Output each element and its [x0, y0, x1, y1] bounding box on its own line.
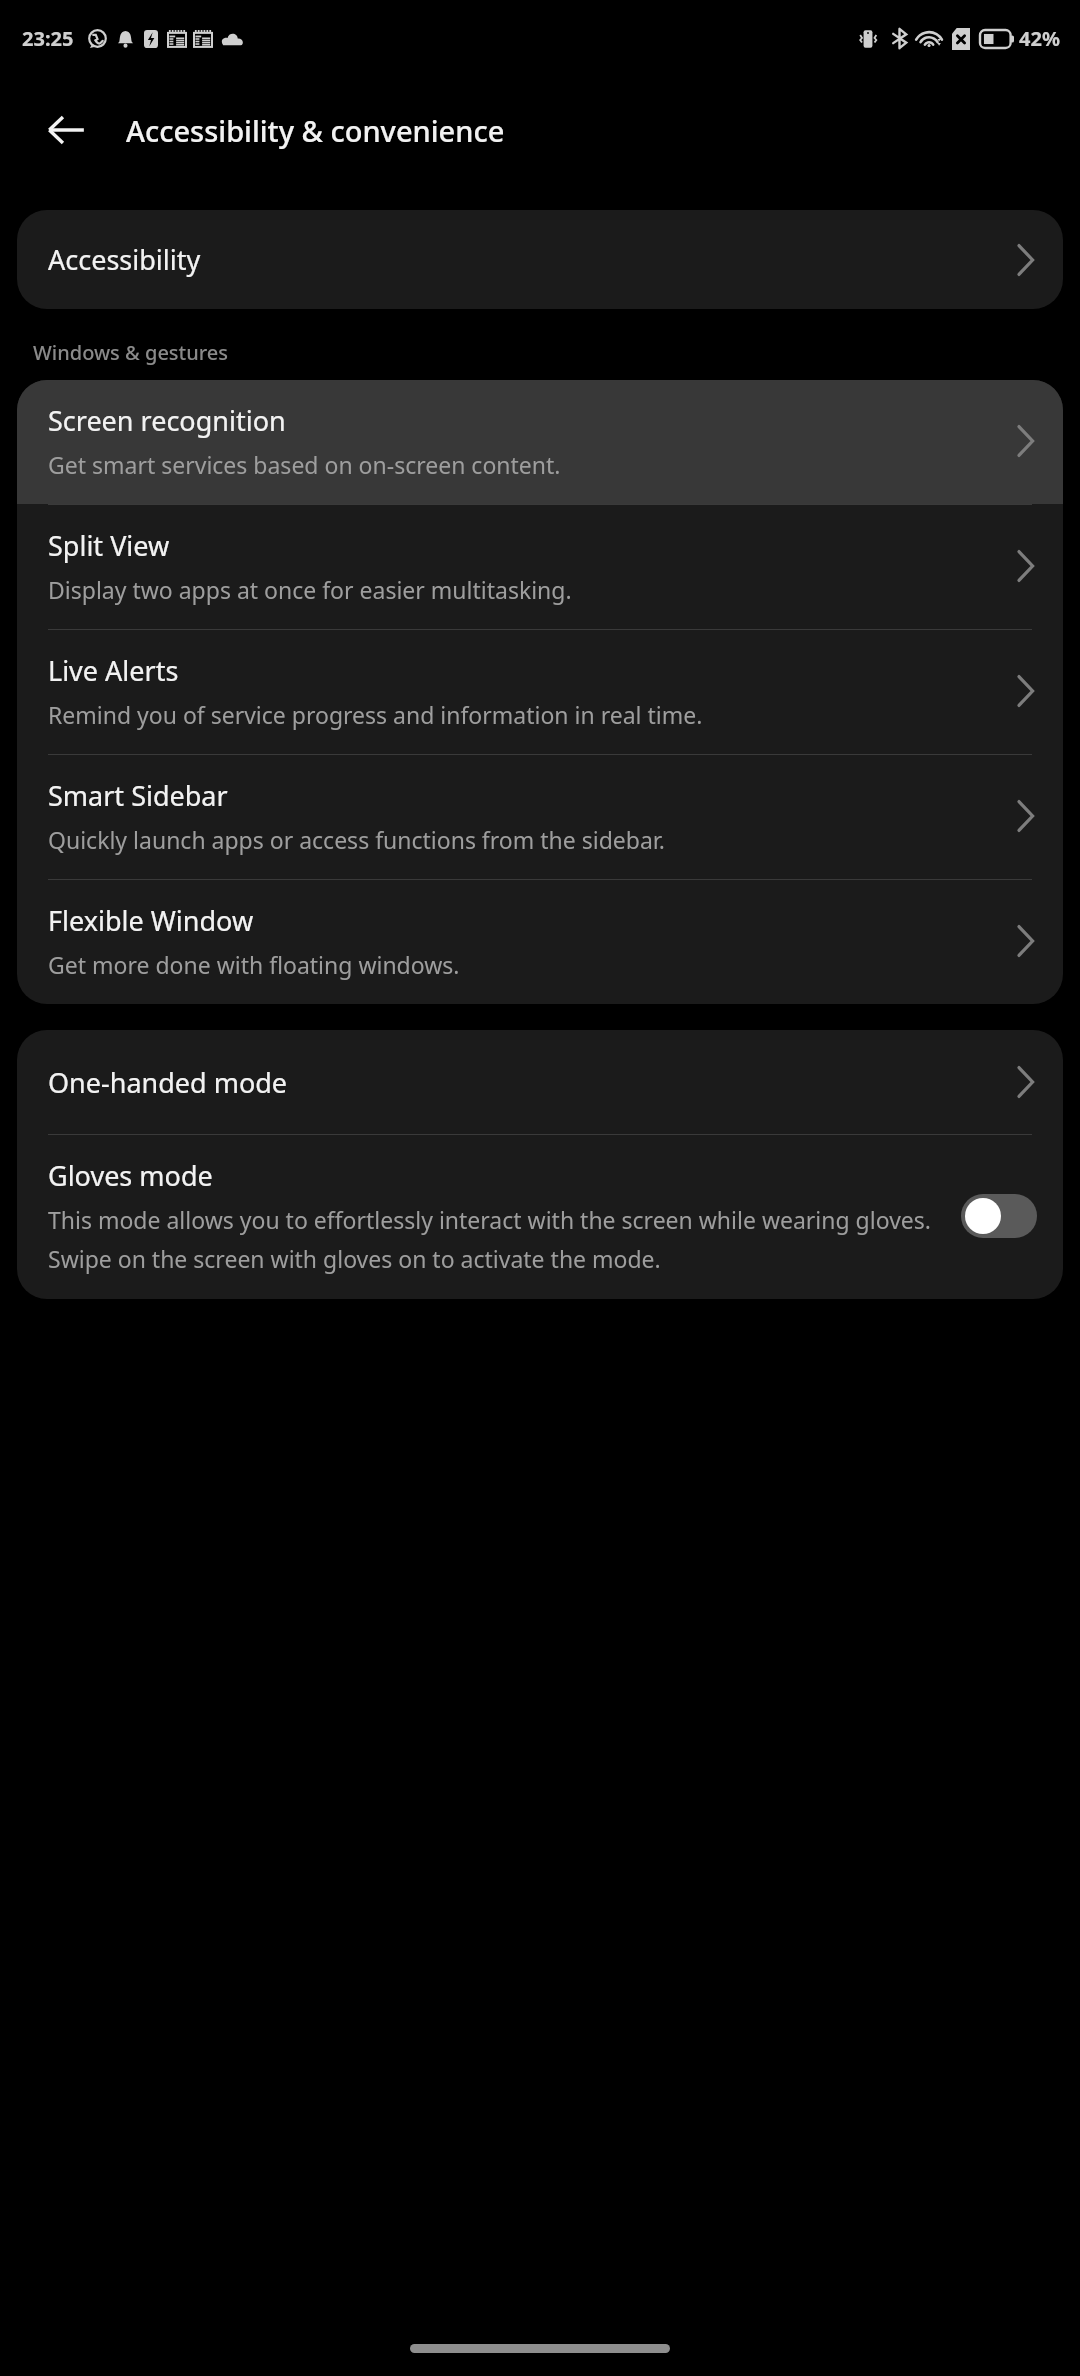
- button[interactable]: Flexible Window: [17, 880, 1063, 1004]
- staticText: Live Alerts: [48, 652, 179, 689]
- button[interactable]: One-handed mode: [17, 1030, 1063, 1134]
- staticText: One-handed mode: [48, 1064, 1015, 1101]
- staticText: Accessibility & convenience: [126, 111, 505, 150]
- staticText: Get more done with floating windows.: [48, 949, 460, 980]
- staticText: Display two apps at once for easier mult…: [48, 574, 572, 605]
- staticText: 42%: [1019, 25, 1060, 52]
- staticText: Flexible Window: [48, 902, 254, 939]
- staticText: Accessibility: [48, 241, 1015, 278]
- staticText: 23:25: [22, 25, 74, 52]
- button[interactable]: Smart Sidebar: [17, 755, 1063, 879]
- staticText: This mode allows you to effortlessly int…: [48, 1204, 945, 1275]
- button[interactable]: Accessibility: [17, 210, 1063, 309]
- button[interactable]: Back: [30, 94, 102, 166]
- button[interactable]: Split View: [17, 505, 1063, 629]
- button[interactable]: Gloves mode: [17, 1135, 1063, 1299]
- staticText: Windows & gestures: [33, 339, 229, 366]
- button[interactable]: Live Alerts: [17, 630, 1063, 754]
- staticText: Gloves mode: [48, 1157, 213, 1194]
- staticText: Quickly launch apps or access functions …: [48, 824, 665, 855]
- staticText: Split View: [48, 527, 170, 564]
- button[interactable]: Gloves mode toggle: [961, 1194, 1037, 1238]
- staticText: Smart Sidebar: [48, 777, 228, 814]
- staticText: Screen recognition: [48, 402, 286, 439]
- staticText: Get smart services based on on-screen co…: [48, 449, 561, 480]
- button[interactable]: Screen recognition: [17, 380, 1063, 504]
- staticText: Remind you of service progress and infor…: [48, 699, 703, 730]
